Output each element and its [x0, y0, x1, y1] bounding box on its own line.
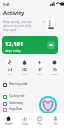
button[interactable]: Home: [2, 116, 15, 126]
staticText: kcal: [22, 72, 27, 75]
staticText: Morning walk: [9, 82, 28, 86]
button[interactable]: Morning walk: [3, 82, 43, 88]
staticText: 12,181: [5, 40, 24, 48]
staticText: Cycling ride: [9, 94, 25, 98]
staticText: 320: [22, 68, 27, 72]
button[interactable]: Swimming: [3, 101, 43, 107]
staticText: km: [8, 72, 12, 75]
staticText: step goal: [3, 28, 17, 32]
button[interactable]: 47: [33, 58, 46, 75]
staticText: 2.4: [8, 68, 12, 72]
button[interactable]: Me: [49, 116, 62, 126]
staticText: 8h: [53, 68, 57, 72]
staticText: 9:41: [3, 2, 10, 7]
staticText: Me: [54, 122, 58, 126]
button[interactable]: Yoga flow: [3, 107, 43, 113]
staticText: Yoga flow: [9, 107, 22, 111]
staticText: Stats: [22, 122, 28, 126]
staticText: 47: [38, 68, 42, 72]
staticText: Plan: [37, 122, 43, 126]
button[interactable]: Cycling ride: [3, 94, 43, 100]
staticText: Swimming: [9, 101, 24, 105]
staticText: Activity: [3, 9, 25, 17]
button[interactable]: 8h: [48, 58, 61, 75]
button[interactable]: Stats: [18, 116, 31, 126]
staticText: Home: [5, 122, 13, 126]
staticText: steps today: [5, 49, 21, 53]
staticText: almost at your daily: [3, 24, 32, 28]
button[interactable]: Plan: [33, 116, 46, 126]
staticText: min: [37, 72, 42, 75]
button[interactable]: 2.4: [3, 58, 16, 75]
staticText: sleep: [51, 72, 58, 75]
button[interactable]: 320: [18, 58, 31, 75]
button[interactable]: 12,181: [2, 36, 58, 54]
button[interactable]: Device: [47, 19, 55, 29]
staticText: Keep going, you are: [3, 20, 32, 24]
